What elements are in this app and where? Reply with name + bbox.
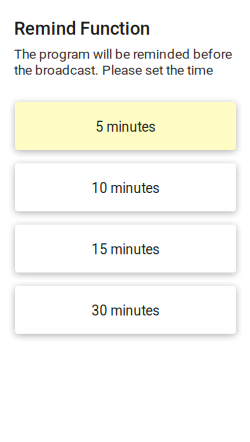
staticText: The program will be reminded before	[14, 46, 232, 62]
button[interactable]: 5 minutes	[15, 102, 236, 150]
button[interactable]: 15 minutes	[15, 225, 236, 273]
staticText: 30 minutes	[91, 303, 159, 319]
staticText: 10 minutes	[91, 180, 159, 196]
staticText: 5 minutes	[95, 119, 155, 135]
button[interactable]: 10 minutes	[15, 163, 236, 211]
staticText: 15 minutes	[91, 241, 159, 258]
staticText: the broadcast. Please set the time	[14, 62, 213, 78]
staticText: Remind Function	[14, 18, 150, 39]
button[interactable]: 30 minutes	[15, 286, 236, 334]
